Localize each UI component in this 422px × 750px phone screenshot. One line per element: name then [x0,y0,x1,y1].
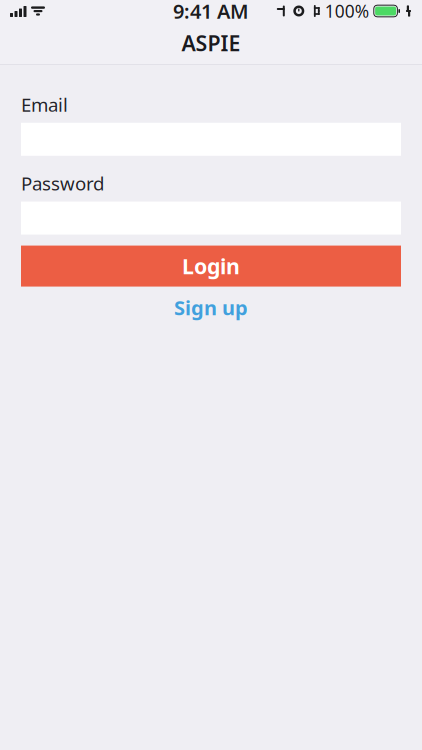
button[interactable]: Sign up [21,293,401,323]
staticText: 9:41 AM [173,0,249,24]
staticText: Password [21,171,104,196]
staticText: Sign up [174,294,248,321]
staticText: ASPIE [181,29,240,57]
staticText: Login [182,252,240,280]
staticText: 100% [325,0,369,22]
staticText: Email [21,92,68,117]
button[interactable]: Login [21,246,401,287]
